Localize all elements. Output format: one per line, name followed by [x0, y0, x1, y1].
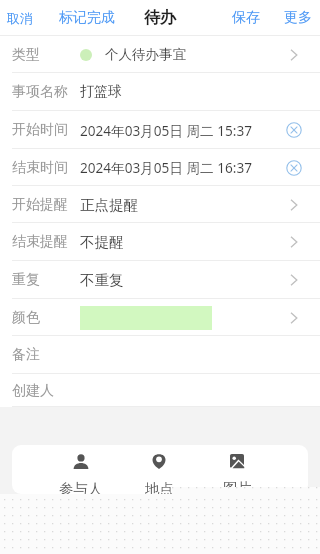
button[interactable]: 保存 — [220, 0, 272, 36]
staticText: 事项名称 — [12, 83, 68, 101]
staticText: 创建人 — [12, 382, 54, 400]
staticText: 保存 — [232, 9, 260, 27]
staticText: 图片 — [223, 479, 252, 494]
staticText: 2024年03月05日 周二 16:37 — [80, 158, 252, 177]
button[interactable]: 取消 — [0, 0, 46, 36]
button[interactable]: 事项名称 — [0, 73, 320, 111]
button[interactable]: 颜色 — [0, 299, 320, 336]
staticText: 参与人 — [59, 480, 103, 494]
button[interactable]: Clear — [286, 122, 302, 138]
staticText: 不提醒 — [80, 233, 124, 251]
staticText: 地点 — [145, 480, 174, 494]
staticText: 开始提醒 — [12, 196, 68, 214]
staticText: 2024年03月05日 周二 15:37 — [80, 121, 252, 140]
button[interactable]: 开始时间 — [0, 111, 320, 149]
staticText: 不重复 — [80, 271, 124, 289]
button[interactable]: 标记完成 — [46, 0, 125, 36]
button[interactable]: 重复 — [0, 261, 320, 299]
staticText: 类型 — [12, 46, 40, 64]
staticText: 结束提醒 — [12, 233, 68, 251]
button[interactable]: Clear — [286, 160, 302, 176]
button[interactable]: 备注 — [0, 336, 320, 374]
staticText: 标记完成 — [59, 9, 115, 27]
staticText: 更多 — [284, 9, 312, 27]
staticText: 待办 — [144, 8, 176, 28]
button[interactable]: 开始提醒 — [0, 186, 320, 223]
button[interactable]: 类型 — [0, 36, 320, 73]
button[interactable]: 结束时间 — [0, 149, 320, 186]
staticText: 打篮球 — [80, 83, 122, 101]
staticText: 备注 — [12, 346, 40, 364]
staticText: 结束时间 — [12, 159, 68, 177]
button[interactable]: Location — [120, 445, 198, 494]
button[interactable]: 结束提醒 — [0, 223, 320, 261]
staticText: 个人待办事宜 — [105, 46, 186, 63]
button[interactable]: 更多 — [272, 0, 320, 36]
staticText: 取消 — [7, 10, 33, 26]
staticText: 重复 — [12, 271, 40, 289]
staticText: 正点提醒 — [80, 196, 138, 214]
staticText: 颜色 — [12, 309, 40, 327]
button[interactable]: Participants — [42, 445, 120, 494]
button[interactable]: Image — [198, 445, 276, 494]
staticText: 开始时间 — [12, 121, 68, 139]
button[interactable]: 创建人 — [0, 374, 320, 407]
